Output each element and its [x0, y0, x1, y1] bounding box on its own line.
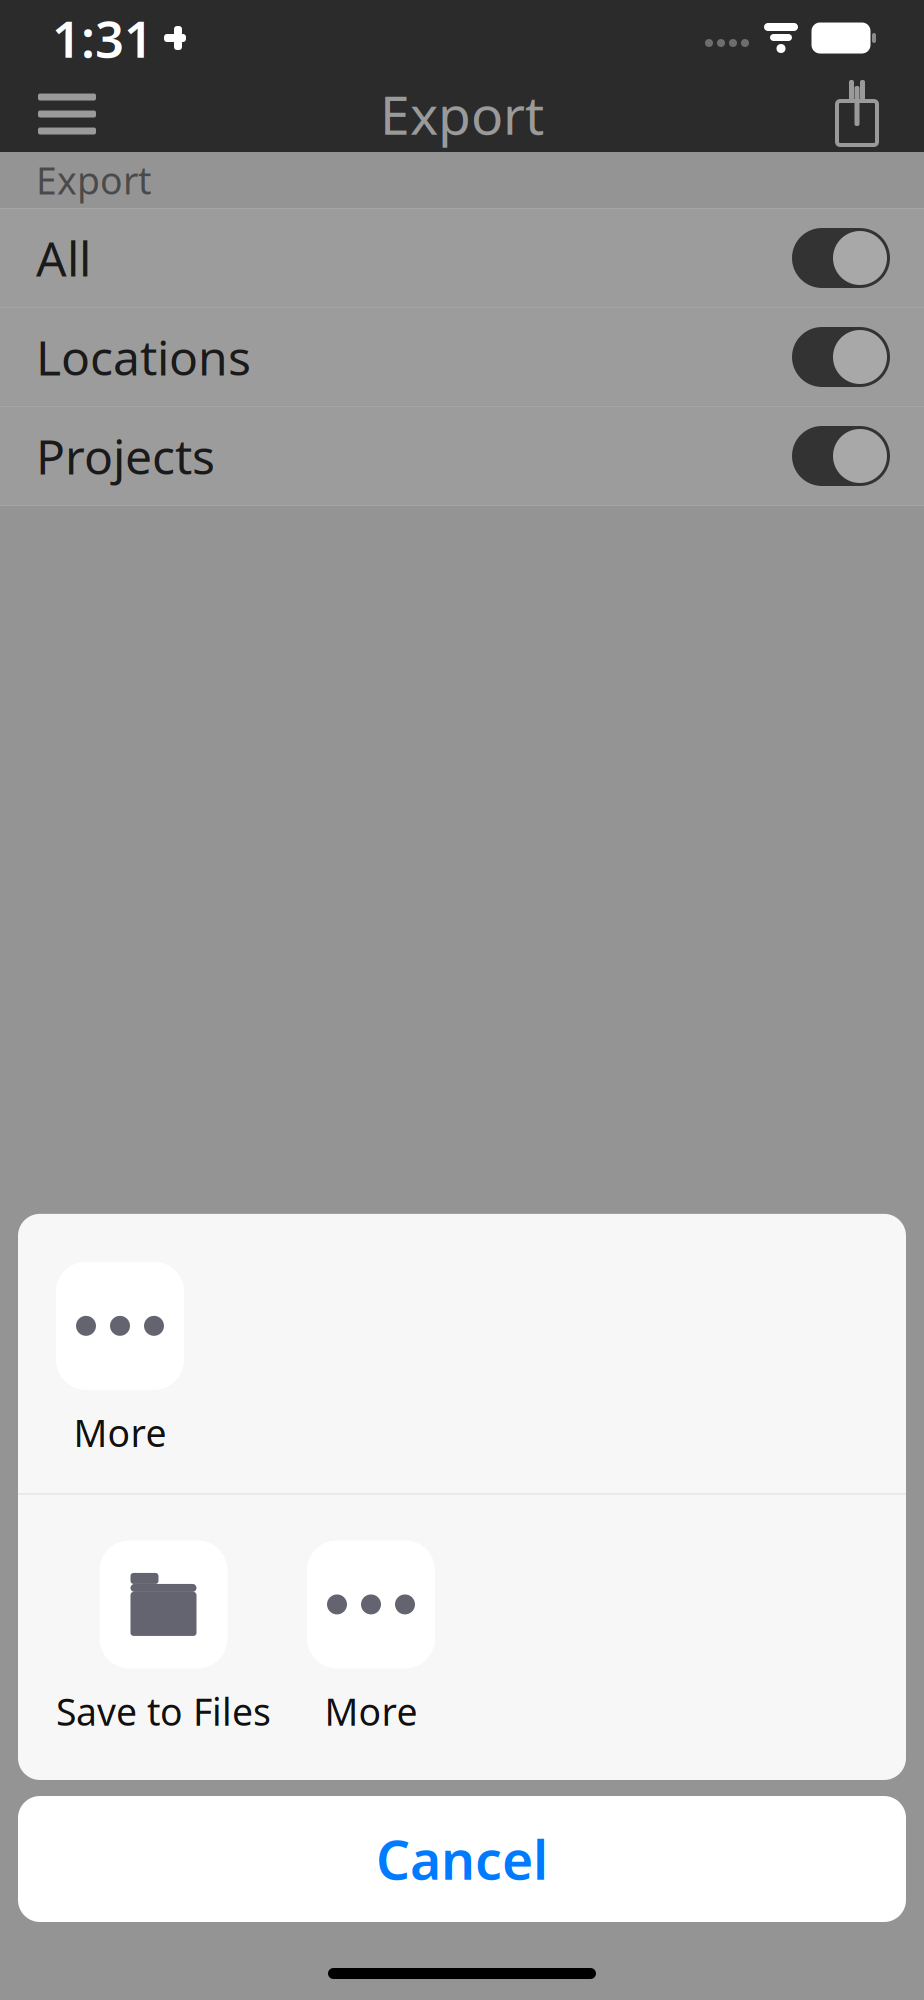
button[interactable]: Cancel: [18, 1796, 906, 1922]
staticText: Projects: [36, 424, 215, 488]
button[interactable]: All: [0, 209, 924, 307]
staticText: More: [324, 1686, 417, 1736]
staticText: All: [36, 226, 91, 290]
button[interactable]: Locations: [0, 308, 924, 406]
staticText: Save to Files: [56, 1686, 271, 1736]
button[interactable]: Menu: [16, 71, 118, 156]
button[interactable]: More: [56, 1262, 184, 1457]
button[interactable]: More: [307, 1540, 435, 1736]
staticText: Export: [380, 79, 544, 149]
staticText: More: [73, 1408, 166, 1457]
staticText: Locations: [36, 325, 251, 389]
button[interactable]: Projects: [0, 407, 924, 505]
staticText: Export: [36, 155, 151, 205]
button[interactable]: Share: [812, 67, 902, 161]
staticText: 1:31: [52, 4, 153, 72]
staticText: Cancel: [376, 1824, 548, 1894]
button[interactable]: Save to Files: [56, 1540, 271, 1736]
